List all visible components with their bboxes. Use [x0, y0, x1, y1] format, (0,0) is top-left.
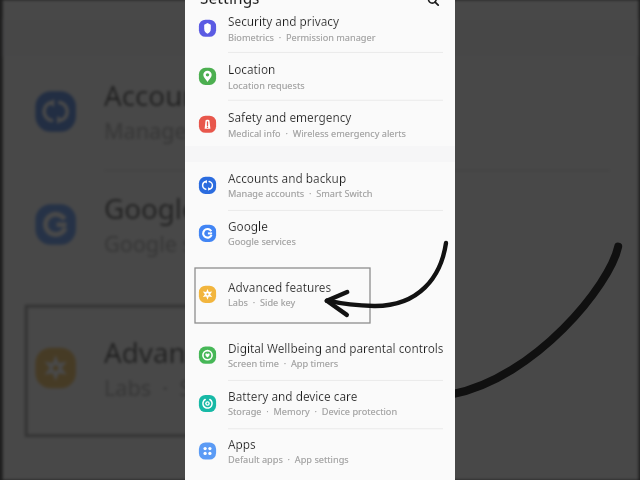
staticText: Labs · Side key: [228, 296, 296, 309]
button[interactable]: Advanced features: [3, 318, 638, 407]
button[interactable]: Security and privacy: [185, 7, 455, 45]
staticText: Location: [228, 61, 276, 77]
staticText: Biometrics · Permission manager: [228, 31, 376, 44]
button[interactable]: Google: [3, 174, 638, 264]
staticText: Screen time · App timers: [228, 357, 339, 370]
button[interactable]: Accounts and backup: [3, 61, 638, 151]
staticText: Default apps · App settings: [228, 453, 349, 466]
staticText: Settings: [200, 0, 260, 9]
staticText: Manage accounts · Smart Switch: [104, 115, 445, 146]
button[interactable]: Google: [185, 212, 455, 250]
staticText: Digital Wellbeing and parental controls: [104, 476, 613, 480]
button[interactable]: Safety and emergency: [185, 103, 455, 141]
staticText: Manage accounts · Smart Switch: [228, 187, 373, 200]
staticText: Medical info · Wireless emergency alerts: [104, 0, 523, 5]
staticText: Google services: [228, 235, 296, 248]
button[interactable]: Safety and emergency: [3, 0, 638, 7]
staticText: Digital Wellbeing and parental controls: [228, 340, 444, 356]
staticText: Apps: [228, 436, 256, 452]
staticText: Security and privacy: [228, 13, 340, 29]
button[interactable]: Accounts and backup: [185, 164, 455, 202]
button[interactable]: Advanced features: [185, 273, 455, 311]
staticText: Labs · Side key: [104, 372, 264, 403]
staticText: Accounts and backup: [104, 75, 384, 113]
staticText: Google: [104, 188, 198, 226]
staticText: Advanced features: [228, 279, 332, 295]
staticText: Advanced features: [104, 332, 349, 370]
staticText: Medical info · Wireless emergency alerts: [228, 127, 406, 140]
staticText: Location requests: [228, 79, 305, 92]
staticText: Accounts and backup: [228, 170, 347, 186]
button[interactable]: Battery and device care: [185, 382, 455, 420]
button[interactable]: Digital Wellbeing and parental controls: [3, 462, 638, 480]
staticText: Safety and emergency: [228, 109, 352, 125]
staticText: Battery and device care: [228, 388, 358, 404]
staticText: Storage · Memory · Device protection: [228, 405, 398, 418]
button[interactable]: Digital Wellbeing and parental controls: [185, 334, 455, 372]
staticText: Google: [228, 218, 268, 234]
button[interactable]: Search: [421, 0, 445, 12]
button[interactable]: Apps: [185, 430, 455, 468]
button[interactable]: Location: [185, 55, 455, 93]
staticText: Google services: [104, 228, 264, 259]
